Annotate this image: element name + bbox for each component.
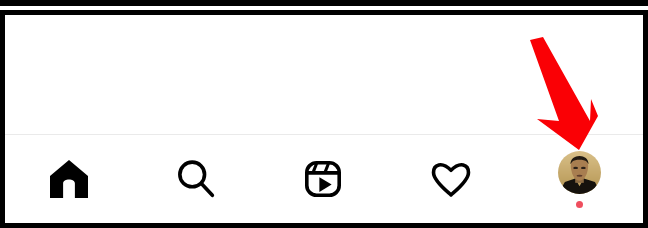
button[interactable]: Reels <box>259 135 387 223</box>
button[interactable]: Profile <box>515 135 643 223</box>
button[interactable]: Activity <box>387 135 515 223</box>
button[interactable]: Home <box>5 135 132 223</box>
button[interactable]: Search <box>132 135 259 223</box>
